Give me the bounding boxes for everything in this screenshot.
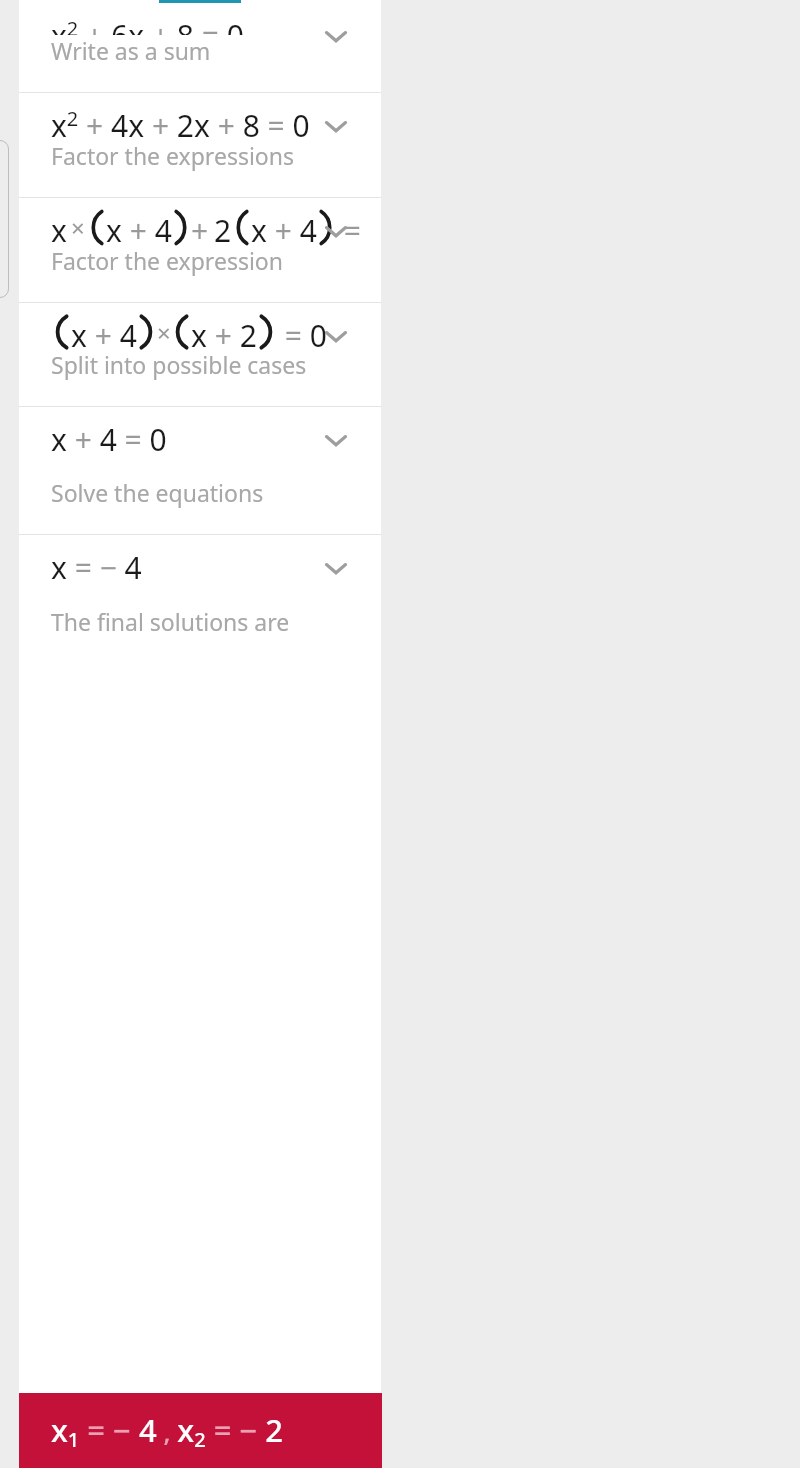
button[interactable]: x + 4 <box>19 303 381 406</box>
staticText: Split into possible cases <box>51 349 307 380</box>
staticText: x + 4 = 0 <box>51 419 167 460</box>
button[interactable]: x = − 4 <box>19 535 381 663</box>
staticText: Factor the expression <box>51 245 283 276</box>
button[interactable]: x1 = − 4 , x2 = − 2 <box>19 1393 382 1468</box>
staticText: × <box>157 316 171 349</box>
staticText: × <box>71 211 85 244</box>
staticText: x <box>51 210 67 245</box>
staticText: = 0 <box>336 210 365 245</box>
staticText: Write as a sum <box>51 35 211 66</box>
staticText: x2 + 6x + 8 = 0 <box>51 15 244 35</box>
button[interactable]: x2 + 6x + 8 = 0 <box>19 3 381 92</box>
staticText: Factor the expressions <box>51 140 294 171</box>
button[interactable]: x + 4 = 0 <box>19 407 381 534</box>
staticText: The final solutions are <box>51 606 290 637</box>
staticText: + <box>191 210 209 245</box>
other: Expand step <box>319 551 353 585</box>
staticText: x2 + 4x + 2x + 8 = 0 <box>51 105 310 140</box>
other: Expand step <box>319 19 353 53</box>
staticText: 2 <box>214 210 232 245</box>
staticText: x = − 4 <box>51 547 142 588</box>
button[interactable]: x <box>19 198 381 302</box>
staticText: x + 4 <box>71 315 137 349</box>
staticText: = 0 <box>277 315 327 349</box>
staticText: x + 4 <box>106 210 172 245</box>
staticText: Solve the equations <box>51 477 264 508</box>
staticText: x + 4 <box>251 210 317 245</box>
other: Expand step <box>319 214 353 248</box>
other: Expand step <box>319 109 353 143</box>
staticText: x + 2 <box>191 315 257 349</box>
button[interactable]: Open drawer <box>0 140 9 298</box>
button[interactable]: x2 + 4x + 2x + 8 = 0 <box>19 93 381 197</box>
other: Expand step <box>319 423 353 457</box>
staticText: x1 = − 4 , x2 = − 2 <box>51 1409 284 1453</box>
other: Expand step <box>319 319 353 353</box>
